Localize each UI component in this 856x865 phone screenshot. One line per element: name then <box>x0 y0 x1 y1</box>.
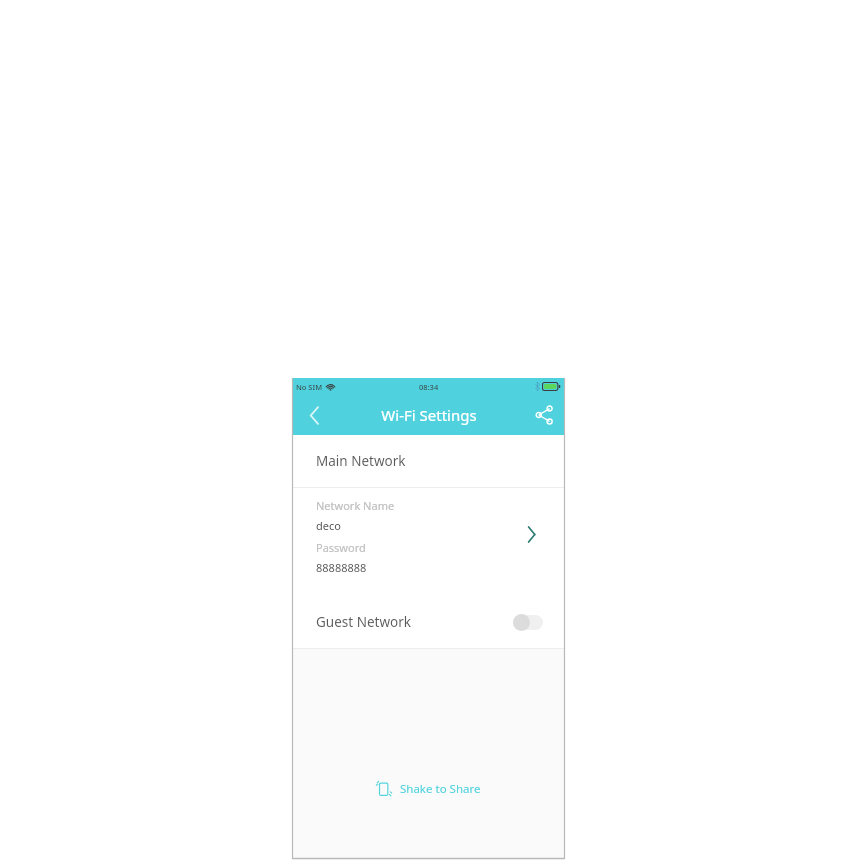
button[interactable]: Guest Network <box>292 596 565 648</box>
staticText: Password <box>316 540 366 555</box>
button[interactable]: Back <box>292 395 336 435</box>
staticText: Network Name <box>316 498 395 513</box>
other: Edit network <box>521 524 541 544</box>
button[interactable]: Shake to Share <box>376 780 481 798</box>
button[interactable]: Network Name <box>292 488 565 596</box>
staticText: Shake to Share <box>400 781 481 797</box>
staticText: Wi-Fi Settings <box>381 405 477 425</box>
button[interactable]: Guest Network toggle <box>513 614 543 631</box>
staticText: deco <box>316 518 341 533</box>
staticText: Guest Network <box>316 613 411 631</box>
staticText: No SIM <box>296 382 323 392</box>
button[interactable]: Share <box>523 395 565 435</box>
staticText: 88888888 <box>316 560 367 575</box>
staticText: 08:34 <box>419 382 439 392</box>
staticText: Main Network <box>316 452 406 470</box>
button[interactable]: Main Network <box>292 435 565 487</box>
